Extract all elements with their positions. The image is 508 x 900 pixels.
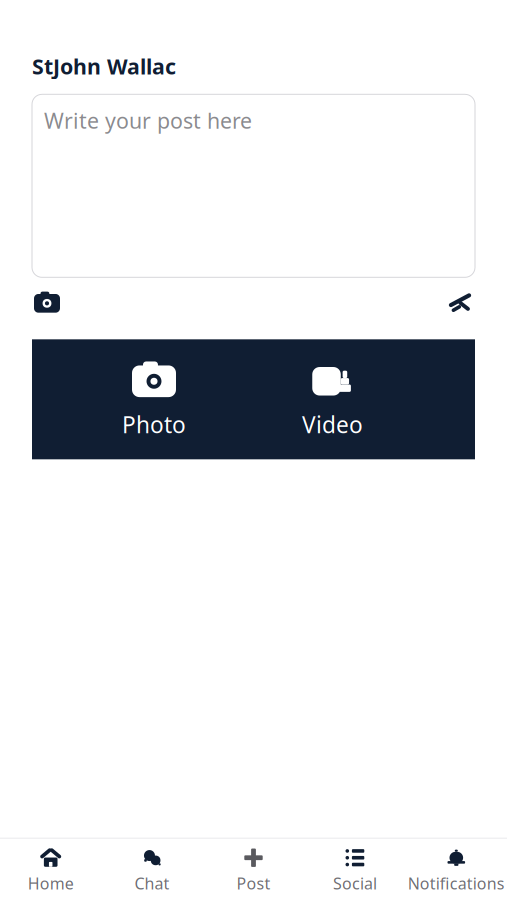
- button[interactable]: Send post: [445, 289, 475, 317]
- staticText: Write your post here: [44, 106, 252, 135]
- button[interactable]: Video: [292, 359, 373, 439]
- staticText: Notifications: [408, 873, 505, 894]
- staticText: Post: [236, 873, 270, 894]
- staticText: Photo: [122, 409, 186, 439]
- staticText: Video: [302, 409, 363, 439]
- button[interactable]: Attach photo: [32, 289, 62, 317]
- button[interactable]: Notifications: [406, 839, 507, 900]
- staticText: Chat: [135, 873, 170, 894]
- button[interactable]: Social: [304, 839, 406, 900]
- button[interactable]: Home: [0, 839, 101, 900]
- button[interactable]: Photo: [112, 359, 196, 439]
- button[interactable]: Chat: [101, 839, 203, 900]
- staticText: Social: [333, 873, 377, 894]
- staticText: Home: [28, 873, 74, 894]
- button[interactable]: Post: [203, 839, 304, 900]
- staticText: StJohn Wallac: [32, 52, 176, 80]
